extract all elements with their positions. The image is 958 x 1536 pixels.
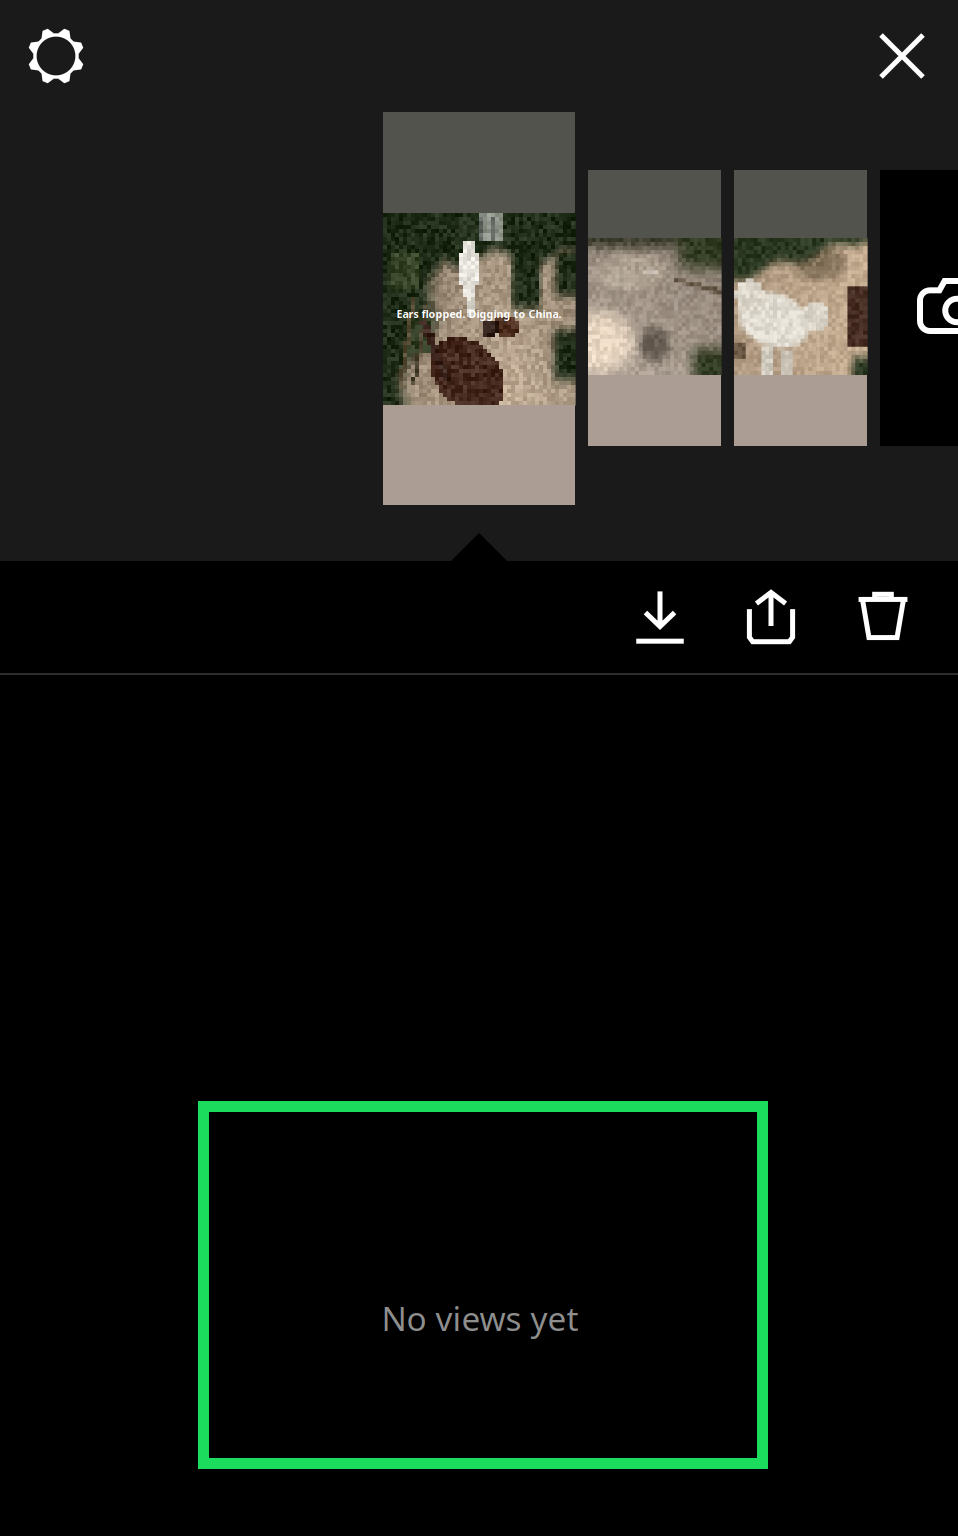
- button[interactable]: Delete: [827, 561, 938, 673]
- staticText: No views yet: [381, 1296, 578, 1340]
- staticText: Ears flopped. Digging to China.: [396, 307, 561, 321]
- button[interactable]: [734, 170, 867, 446]
- button[interactable]: Share: [715, 561, 826, 673]
- button[interactable]: Save: [604, 561, 715, 673]
- button[interactable]: Settings: [6, 6, 106, 106]
- button[interactable]: Ears flopped. Digging to China.: [383, 112, 575, 505]
- button[interactable]: [588, 170, 721, 446]
- button[interactable]: Camera: [880, 170, 958, 446]
- button[interactable]: Close: [852, 6, 952, 106]
